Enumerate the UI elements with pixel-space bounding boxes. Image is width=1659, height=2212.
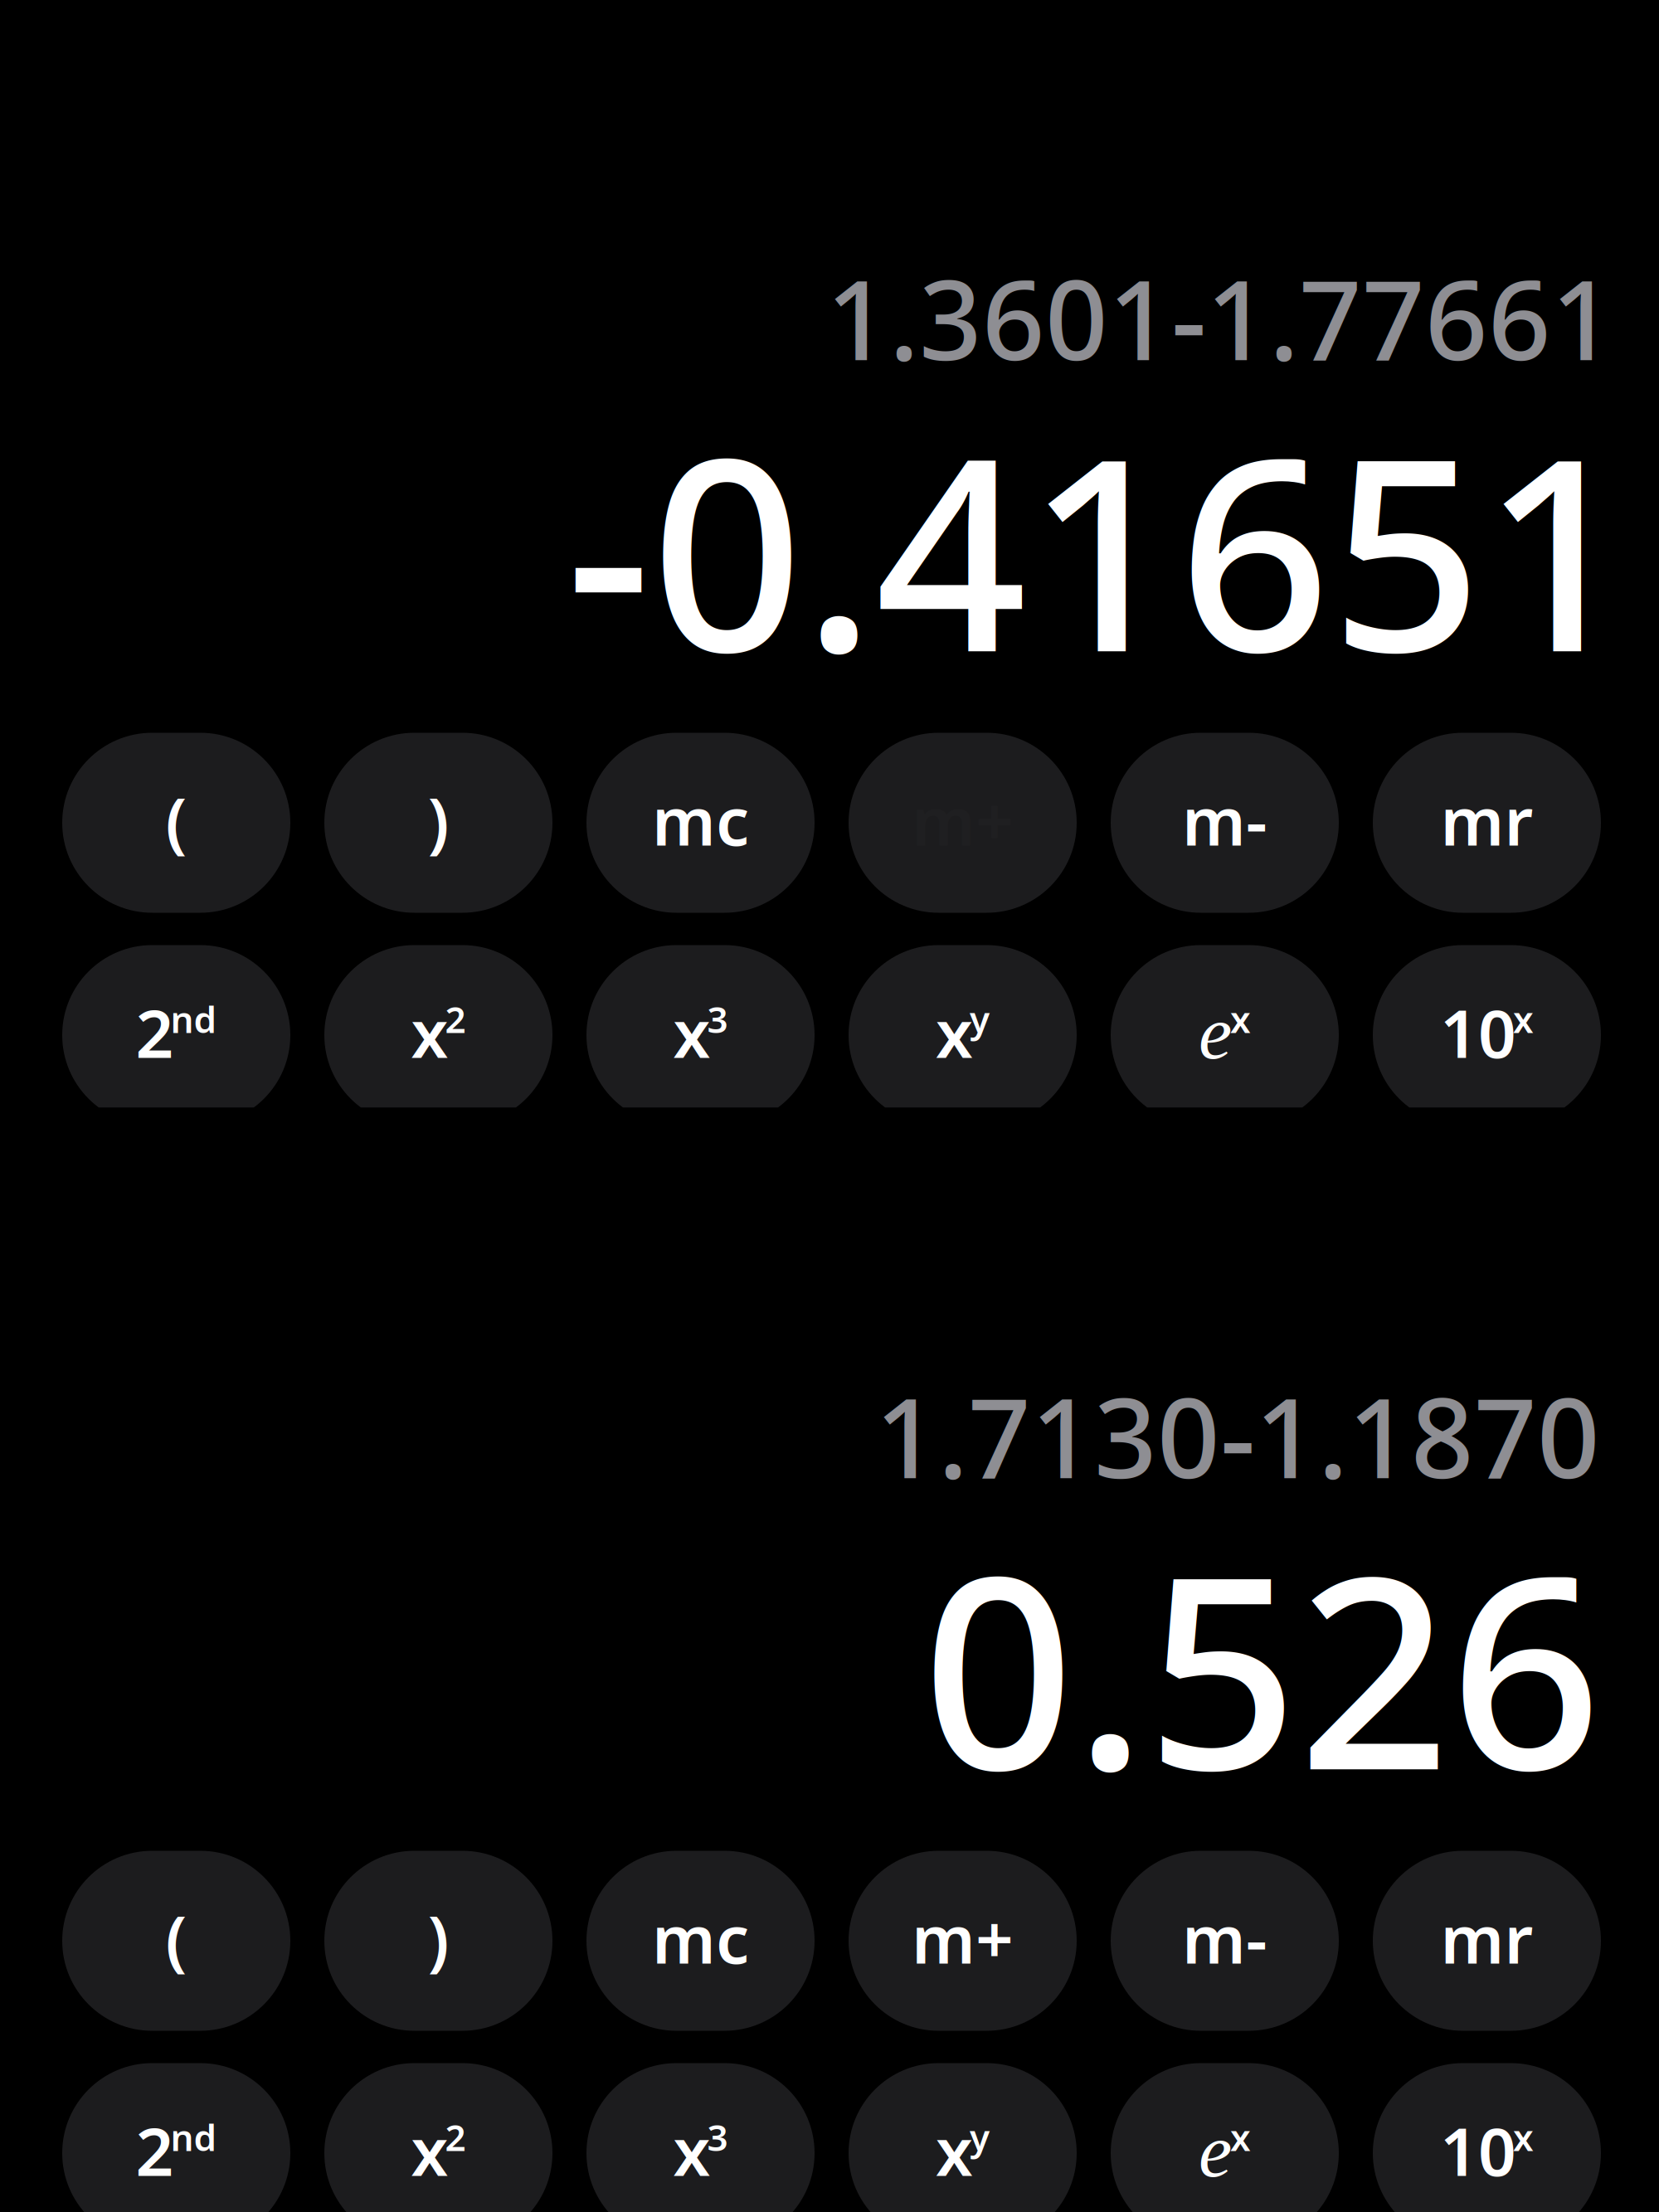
staticText: 0.526 bbox=[922, 1490, 1602, 1842]
staticText: 1.3601-1.77661 bbox=[826, 245, 1614, 390]
button[interactable]: mr bbox=[1373, 733, 1601, 913]
staticText: 2 bbox=[445, 2113, 466, 2161]
staticText: 10 bbox=[1440, 988, 1516, 1076]
staticText: m- bbox=[1182, 1894, 1267, 1982]
button[interactable]: m+ bbox=[849, 733, 1077, 913]
staticText: mr bbox=[1440, 1894, 1533, 1982]
staticText: e bbox=[1199, 2109, 1232, 2193]
staticText: x bbox=[936, 988, 973, 1076]
staticText: 3 bbox=[707, 995, 728, 1043]
staticText: x bbox=[1513, 2113, 1534, 2161]
button[interactable]: m- bbox=[1111, 1851, 1339, 2031]
button[interactable]: x bbox=[324, 2063, 552, 2212]
button[interactable]: 10 bbox=[1373, 945, 1601, 1125]
button[interactable]: 2 bbox=[62, 945, 290, 1125]
staticText: -0.41651 bbox=[566, 372, 1634, 724]
staticText: x bbox=[673, 2106, 710, 2194]
staticText: x bbox=[1230, 995, 1251, 1043]
staticText: 3 bbox=[707, 2113, 728, 2161]
staticText: x bbox=[936, 2106, 973, 2194]
staticText: ( bbox=[165, 776, 187, 864]
staticText: 2 bbox=[136, 2106, 174, 2194]
staticText: ) bbox=[428, 776, 449, 864]
staticText: 1.7130-1.1870 bbox=[875, 1363, 1600, 1509]
staticText: nd bbox=[170, 2113, 217, 2161]
button[interactable]: m- bbox=[1111, 733, 1339, 913]
button[interactable]: x bbox=[586, 2063, 815, 2212]
staticText: 10 bbox=[1440, 2106, 1516, 2194]
button[interactable]: x bbox=[324, 945, 552, 1125]
staticText: ( bbox=[165, 1894, 187, 1982]
button[interactable]: mc bbox=[586, 733, 815, 913]
staticText: mc bbox=[652, 776, 749, 864]
staticText: mc bbox=[652, 1894, 749, 1982]
staticText: x bbox=[411, 988, 448, 1076]
staticText: x bbox=[411, 2106, 448, 2194]
button[interactable]: x bbox=[586, 945, 815, 1125]
staticText: ) bbox=[428, 1894, 449, 1982]
button[interactable]: ) bbox=[324, 733, 552, 913]
staticText: m- bbox=[1182, 776, 1267, 864]
staticText: 2 bbox=[136, 988, 174, 1076]
button[interactable]: x bbox=[849, 945, 1077, 1125]
staticText: y bbox=[970, 2113, 990, 2161]
button[interactable]: 2 bbox=[62, 2063, 290, 2212]
staticText: x bbox=[1230, 2113, 1251, 2161]
staticText: x bbox=[673, 988, 710, 1076]
button[interactable]: mr bbox=[1373, 1851, 1601, 2031]
button[interactable]: 10 bbox=[1373, 2063, 1601, 2212]
staticText: 2 bbox=[445, 995, 466, 1043]
staticText: mr bbox=[1440, 776, 1533, 864]
staticText: e bbox=[1199, 991, 1232, 1075]
button[interactable]: ( bbox=[62, 733, 290, 913]
staticText: x bbox=[1513, 995, 1534, 1043]
staticText: m+ bbox=[912, 1894, 1014, 1982]
button[interactable]: mc bbox=[586, 1851, 815, 2031]
button[interactable]: e bbox=[1111, 945, 1339, 1125]
button[interactable]: m+ bbox=[849, 1851, 1077, 2031]
button[interactable]: ) bbox=[324, 1851, 552, 2031]
button[interactable]: e bbox=[1111, 2063, 1339, 2212]
button[interactable]: ( bbox=[62, 1851, 290, 2031]
staticText: nd bbox=[170, 995, 217, 1043]
staticText: y bbox=[970, 995, 990, 1043]
button[interactable]: x bbox=[849, 2063, 1077, 2212]
